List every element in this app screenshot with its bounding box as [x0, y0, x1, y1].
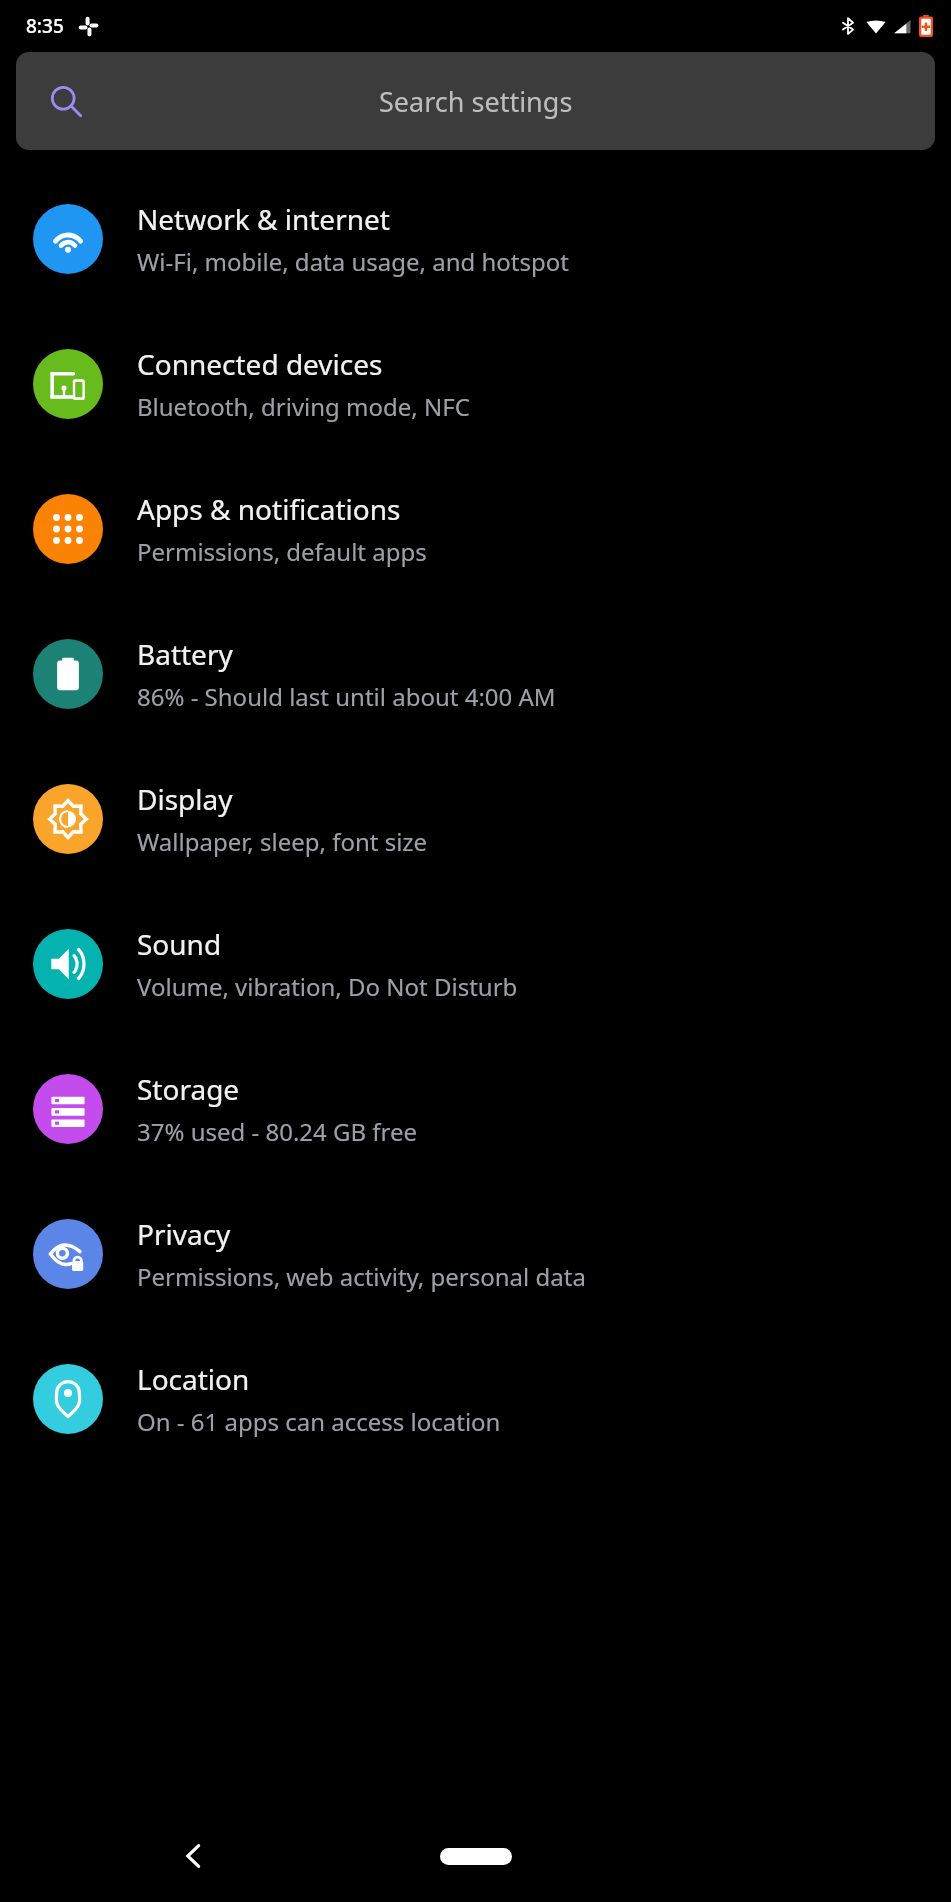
button[interactable]: Storage [0, 1036, 951, 1181]
staticText: Display [137, 780, 233, 818]
staticText: Sound [137, 925, 222, 963]
staticText: Location [137, 1360, 250, 1398]
button[interactable]: Location [0, 1326, 951, 1471]
staticText: Volume, vibration, Do Not Disturb [137, 970, 518, 1003]
staticText: Storage [137, 1070, 240, 1108]
button[interactable]: Network & internet [0, 166, 951, 311]
staticText: Search settings [379, 83, 573, 120]
staticText: Network & internet [137, 200, 390, 238]
staticText: Connected devices [137, 345, 383, 383]
button[interactable]: Apps & notifications [0, 456, 951, 601]
staticText: Wi-Fi, mobile, data usage, and hotspot [137, 245, 569, 278]
staticText: Battery [137, 635, 233, 673]
staticText: Bluetooth, driving mode, NFC [137, 390, 470, 423]
staticText: Permissions, default apps [137, 535, 427, 568]
staticText: Privacy [137, 1215, 231, 1253]
staticText: On - 61 apps can access location [137, 1405, 501, 1438]
button[interactable]: Home [428, 1832, 524, 1880]
button[interactable]: Privacy [0, 1181, 951, 1326]
staticText: 86% - Should last until about 4:00 AM [137, 680, 556, 713]
button[interactable]: Back [166, 1828, 222, 1884]
staticText: Apps & notifications [137, 490, 401, 528]
button[interactable]: Connected devices [0, 311, 951, 456]
button[interactable]: Battery [0, 601, 951, 746]
button[interactable]: Search settings [16, 52, 935, 150]
button[interactable]: Display [0, 746, 951, 891]
staticText: Wallpaper, sleep, font size [137, 825, 428, 858]
button[interactable]: Sound [0, 891, 951, 1036]
staticText: 8:35 [26, 13, 64, 39]
staticText: 37% used - 80.24 GB free [137, 1115, 418, 1148]
staticText: Permissions, web activity, personal data [137, 1260, 586, 1293]
